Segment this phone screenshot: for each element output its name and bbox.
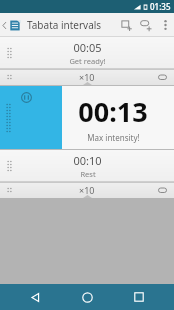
button[interactable]: Back xyxy=(18,284,52,310)
button[interactable]: 00:10 xyxy=(0,150,174,182)
button[interactable]: Add loop xyxy=(136,13,156,37)
staticText: 00:10 xyxy=(73,153,102,168)
button[interactable]: Home xyxy=(70,284,104,310)
button[interactable]: More options xyxy=(156,13,174,37)
button[interactable]: Recent apps xyxy=(122,284,156,310)
button[interactable]: ×10 xyxy=(0,182,174,198)
staticText: 00:13 xyxy=(78,93,148,130)
staticText: ×10 xyxy=(79,184,95,196)
staticText: Tabata intervals xyxy=(27,18,102,32)
button[interactable]: Repeat xyxy=(155,183,169,197)
button[interactable]: Pause xyxy=(0,85,174,150)
button[interactable]: Add timer xyxy=(116,13,136,37)
staticText: Rest xyxy=(80,169,96,179)
button[interactable]: ×10 xyxy=(0,69,174,85)
staticText: Max intensity! xyxy=(87,132,140,143)
button[interactable]: Repeat xyxy=(155,70,169,84)
staticText: 00:05 xyxy=(73,40,102,55)
staticText: Get ready! xyxy=(69,56,106,66)
staticText: 01:35 xyxy=(150,1,171,12)
button[interactable]: Pause xyxy=(18,89,34,105)
staticText: ×10 xyxy=(79,71,95,83)
button[interactable]: 00:05 xyxy=(0,37,174,69)
button[interactable]: Navigate up xyxy=(0,13,24,37)
